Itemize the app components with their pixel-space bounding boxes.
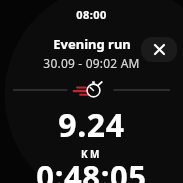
staticText: Evening run	[53, 35, 131, 53]
staticText: KM	[81, 147, 102, 161]
button[interactable]: Close	[141, 37, 177, 62]
staticText: 30.09 - 09:02 AM	[43, 55, 140, 71]
staticText: 9.24	[58, 103, 125, 147]
staticText: 0:48:05	[36, 155, 147, 183]
staticText: 08:00	[76, 7, 107, 22]
